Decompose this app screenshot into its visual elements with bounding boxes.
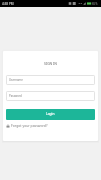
button[interactable]: Login <box>6 109 95 120</box>
staticText: Login <box>46 112 55 116</box>
staticText: SIGN IN <box>3 61 98 66</box>
other: Forgot your password <box>6 124 10 128</box>
button[interactable]: Forgot your password <box>6 123 48 128</box>
staticText: Username <box>9 78 23 82</box>
staticText: Forgot your password? <box>11 123 48 128</box>
staticText: 65% <box>92 2 98 6</box>
staticText: Password <box>9 94 22 98</box>
button[interactable]: Username <box>6 75 95 85</box>
button[interactable]: Password <box>6 91 95 101</box>
staticText: 4:38 PM <box>2 2 14 6</box>
